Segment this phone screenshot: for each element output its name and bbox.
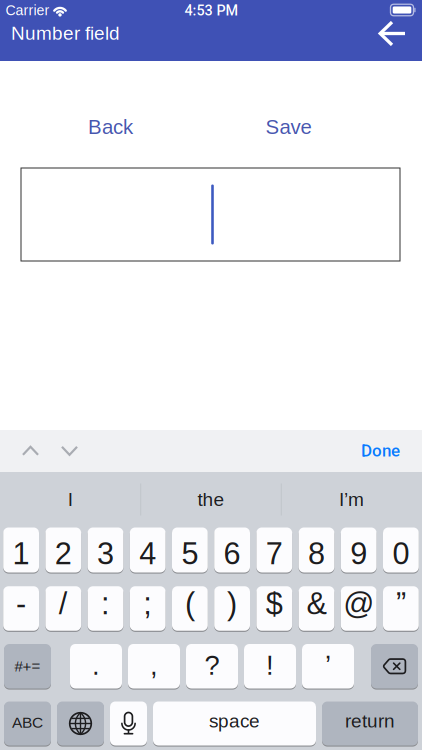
staticText: - (16, 586, 26, 621)
staticText: , (150, 650, 158, 680)
staticText: ) (227, 586, 237, 621)
staticText: Save (265, 116, 311, 138)
staticText: $ (266, 586, 283, 621)
staticText: 4 (139, 536, 156, 571)
staticText: ; (143, 586, 152, 621)
staticText: 8 (308, 536, 325, 571)
staticText: 6 (224, 536, 241, 571)
staticText: Back (88, 116, 133, 138)
staticText: & (306, 586, 326, 621)
staticText: 1 (13, 536, 30, 571)
staticText: Number field (11, 22, 120, 44)
staticText: 4:53 PM (184, 2, 238, 19)
staticText: ABC (12, 714, 43, 731)
staticText: ! (266, 650, 274, 680)
staticText: 9 (350, 536, 367, 571)
staticText: ” (396, 586, 406, 621)
staticText: return (345, 710, 395, 732)
staticText: #+= (14, 658, 40, 675)
staticText: the (197, 489, 224, 510)
staticText: ? (204, 650, 219, 680)
staticText: 5 (181, 536, 198, 571)
staticText: . (92, 650, 100, 680)
staticText: @ (343, 586, 374, 621)
staticText: Done (361, 441, 400, 461)
staticText: 3 (97, 536, 114, 571)
staticText: Carrier (5, 2, 49, 18)
staticText: / (59, 586, 68, 621)
staticText: ( (185, 586, 195, 621)
staticText: 7 (266, 536, 283, 571)
staticText: 0 (392, 536, 409, 571)
staticText: I’m (339, 489, 364, 510)
staticText: space (209, 710, 260, 732)
staticText: 2 (55, 536, 72, 571)
staticText: I (68, 489, 73, 510)
staticText: : (101, 586, 110, 621)
staticText: ’ (325, 650, 331, 680)
